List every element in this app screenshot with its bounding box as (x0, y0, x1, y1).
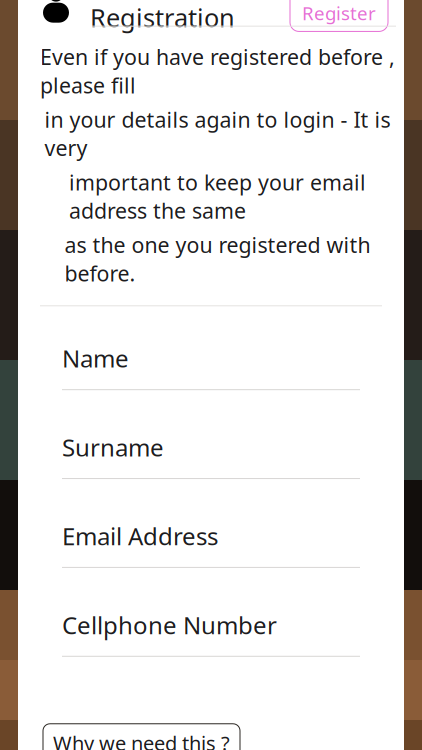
staticText: in your details again to login - It is v… (44, 105, 390, 162)
staticText: Name (62, 342, 129, 374)
staticText: Even if you have registered before , ple… (40, 43, 395, 99)
staticText: as the one you registered with before. (64, 231, 370, 287)
staticText: Cellphone Number (62, 609, 277, 641)
staticText: Why we need this ? (53, 730, 230, 750)
staticText: Email Address (62, 520, 218, 552)
staticText: important to keep your email address the… (69, 168, 366, 225)
button[interactable]: Why we need this ? (43, 724, 240, 750)
staticText: User Registration (90, 0, 235, 34)
staticText: Login/Register (302, 0, 376, 25)
staticText: Surname (62, 431, 164, 463)
button[interactable]: Login/Register (290, 0, 388, 31)
